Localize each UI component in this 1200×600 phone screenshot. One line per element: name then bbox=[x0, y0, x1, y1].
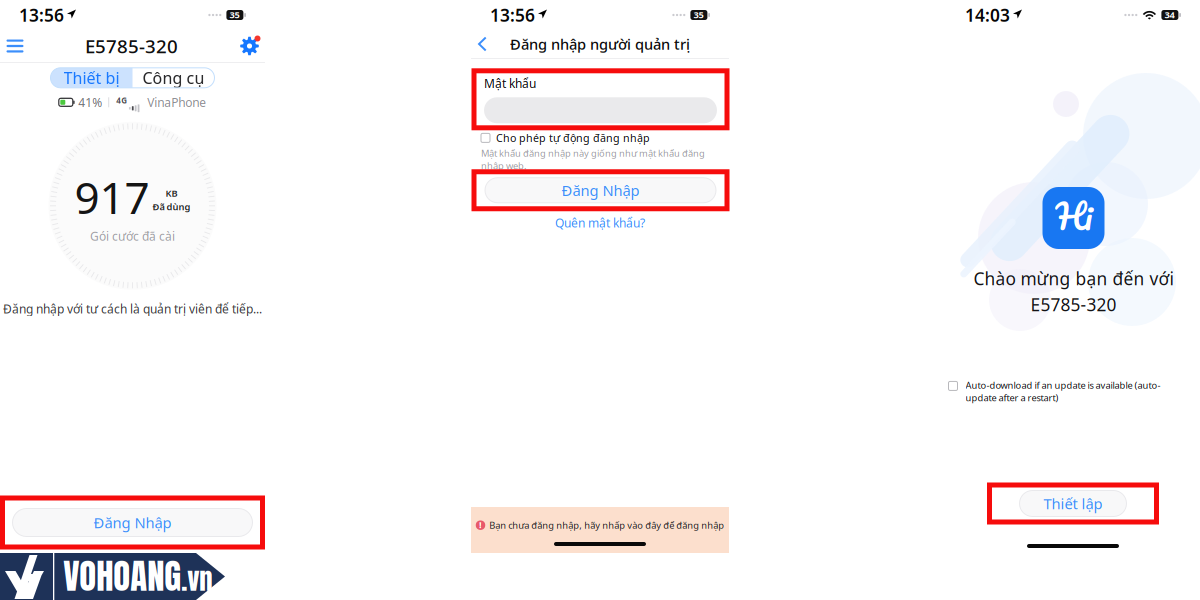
staticText: Bạn chưa đăng nhập, hãy nhấp vào đây để … bbox=[489, 519, 724, 531]
staticText: 13:56 bbox=[490, 3, 535, 26]
button[interactable]: Quên mật khẩu? bbox=[472, 212, 728, 234]
staticText: 917 bbox=[74, 168, 149, 226]
staticText: 41% bbox=[78, 94, 102, 110]
button[interactable]: Đăng Nhập bbox=[2, 498, 262, 547]
staticText: 35 bbox=[229, 8, 239, 21]
button[interactable]: Công cụ bbox=[132, 68, 214, 88]
staticText: Đăng nhập với tư cách là quản trị viên đ… bbox=[3, 301, 262, 317]
button[interactable]: Thiết lập bbox=[989, 485, 1156, 522]
button[interactable]: Back bbox=[476, 31, 502, 57]
button[interactable]: Thiết bị bbox=[50, 68, 132, 88]
staticText: Đăng nhập người quản trị bbox=[510, 34, 690, 54]
staticText: E5785-320 bbox=[1030, 293, 1116, 316]
staticText: Đăng Nhập bbox=[93, 513, 171, 532]
button[interactable]: Auto-download if an update is available … bbox=[948, 379, 1160, 404]
staticText: VinaPhone bbox=[147, 94, 206, 110]
button[interactable]: Cho phép tự động đăng nhập bbox=[481, 131, 650, 145]
staticText: E5785-320 bbox=[85, 34, 178, 58]
staticText: Thiết lập bbox=[1043, 494, 1102, 513]
staticText: KB bbox=[165, 187, 177, 199]
staticText: Quên mật khẩu? bbox=[555, 215, 645, 231]
staticText: 4G bbox=[116, 95, 127, 106]
staticText: Cho phép tự động đăng nhập bbox=[496, 131, 650, 145]
button[interactable]: Menu bbox=[4, 31, 34, 61]
staticText: Đã dùng bbox=[152, 200, 190, 213]
staticText: Chào mừng bạn đến với bbox=[973, 267, 1173, 290]
staticText: Hi bbox=[1055, 187, 1091, 245]
staticText: Auto-download if an update is available … bbox=[965, 379, 1160, 404]
staticText: .vn bbox=[181, 559, 212, 599]
staticText: 13:56 bbox=[19, 3, 64, 26]
staticText: Mật khẩu đăng nhập này giống như mật khẩ… bbox=[481, 147, 705, 172]
staticText: Mật khẩu bbox=[484, 75, 536, 91]
staticText: VOHOANG bbox=[63, 550, 181, 600]
staticText: Công cụ bbox=[142, 67, 204, 88]
staticText: Đăng Nhập bbox=[561, 180, 639, 200]
staticText: 14:03 bbox=[965, 3, 1010, 26]
staticText: Thiết bị bbox=[63, 67, 119, 88]
button[interactable]: Settings bbox=[229, 31, 259, 61]
button[interactable]: Đăng Nhập bbox=[474, 172, 727, 209]
staticText: 34 bbox=[1164, 8, 1174, 21]
staticText: ! bbox=[479, 518, 482, 531]
staticText: 35 bbox=[693, 8, 703, 21]
staticText: Gói cước đã cài bbox=[90, 228, 175, 244]
